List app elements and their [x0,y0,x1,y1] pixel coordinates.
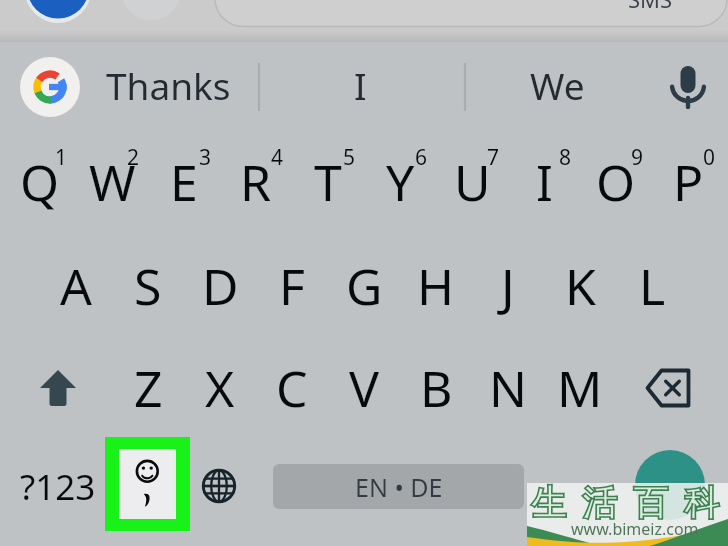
staticText: 6 [415,143,428,172]
button[interactable]: Y [364,132,436,232]
staticText: SMS [628,0,673,14]
staticText: T [314,148,342,216]
staticText: 5 [343,143,356,172]
staticText: www.bimeiz.com [571,518,699,540]
staticText: C [276,354,308,422]
button[interactable]: B [400,338,472,438]
button[interactable]: L [616,236,688,336]
staticText: E [170,148,198,216]
button[interactable]: We [465,47,649,123]
staticText: A [60,252,92,320]
button[interactable]: F [256,236,328,336]
staticText: U [454,148,491,216]
button[interactable]: G [328,236,400,336]
button[interactable]: K [544,236,616,336]
staticText: B [420,354,453,422]
button[interactable]: T [292,132,364,232]
staticText: G [346,252,383,320]
button[interactable]: EN • DE [273,464,524,509]
button[interactable]: O [580,132,652,232]
button[interactable]: I [508,132,580,232]
button[interactable]: W [76,132,148,232]
button[interactable]: I [259,47,462,123]
staticText: I [536,148,553,216]
staticText: 3 [199,143,212,172]
staticText: EN • DE [355,470,443,504]
button[interactable]: J [472,236,544,336]
staticText: 7 [487,143,500,172]
staticText: 0 [703,143,716,172]
button[interactable]: ?123 [8,437,108,537]
button[interactable]: N [472,338,544,438]
staticText: P [673,148,704,216]
button[interactable]: Voice input [648,42,728,132]
button[interactable]: C [256,338,328,438]
staticText: 4 [271,143,284,172]
staticText: 8 [559,143,572,172]
staticText: ?123 [20,463,96,511]
button[interactable]: Shift [22,338,94,438]
staticText: Q [20,148,60,216]
button[interactable]: Thanks [86,47,251,123]
staticText: K [565,252,596,320]
button[interactable]: S [112,236,184,336]
button[interactable]: P [652,132,724,232]
button[interactable]: Z [112,338,184,438]
staticText: 生活百科 [523,481,727,525]
staticText: L [639,252,666,320]
button[interactable]: A [40,236,112,336]
staticText: D [202,252,239,320]
staticText: Z [134,354,163,422]
button[interactable]: V [328,338,400,438]
button[interactable]: Emoji [105,437,190,531]
staticText: 1 [55,143,68,172]
button[interactable]: H [400,236,472,336]
staticText: O [596,148,636,216]
button[interactable]: Google search [20,57,80,117]
button[interactable]: U [436,132,508,232]
button[interactable]: X [184,338,256,438]
staticText: 生活百科 [523,481,727,525]
staticText: H [417,252,455,320]
button[interactable]: R [220,132,292,232]
button[interactable]: Change keyboard language [183,441,255,531]
staticText: Thanks [106,60,231,110]
staticText: V [349,354,379,422]
staticText: We [530,60,585,110]
button[interactable]: E [148,132,220,232]
staticText: W [89,148,136,216]
button[interactable]: Backspace [633,338,705,438]
staticText: S [134,252,162,320]
button[interactable]: D [184,236,256,336]
staticText: M [557,354,603,422]
staticText: 9 [631,143,644,172]
staticText: 2 [127,143,140,172]
staticText: R [240,148,272,216]
button[interactable]: Q [4,132,76,232]
staticText: F [279,252,305,320]
staticText: Y [386,148,415,216]
staticText: J [501,252,515,320]
button[interactable]: M [544,338,616,438]
staticText: I [354,60,367,110]
staticText: X [205,354,235,422]
staticText: N [489,354,527,422]
